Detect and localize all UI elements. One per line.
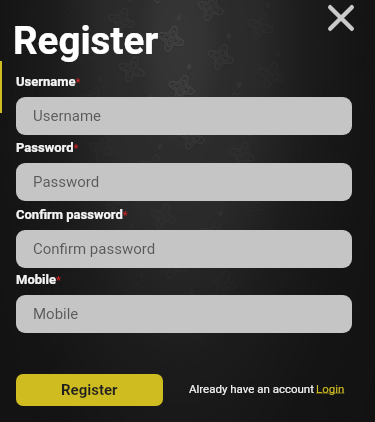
staticText: Username <box>33 107 102 125</box>
staticText: Username* <box>16 74 81 89</box>
button[interactable]: Mobile <box>16 295 352 333</box>
staticText: Register <box>13 18 159 63</box>
button[interactable]: Login <box>314 382 345 395</box>
button[interactable]: Close <box>325 2 357 34</box>
staticText: Password* <box>16 140 79 155</box>
button[interactable]: Confirm password <box>16 230 352 268</box>
staticText: Password <box>33 173 100 191</box>
staticText: Confirm password <box>33 240 156 258</box>
staticText: Register <box>61 381 118 399</box>
staticText: Login <box>316 382 345 395</box>
staticText: Already have an account <box>189 382 314 395</box>
staticText: Mobile* <box>16 272 61 287</box>
button[interactable]: Username <box>16 97 352 135</box>
button[interactable]: Password <box>16 163 352 201</box>
staticText: Mobile <box>33 305 79 323</box>
button[interactable]: Register <box>16 374 163 406</box>
staticText: Confirm password* <box>16 207 128 222</box>
